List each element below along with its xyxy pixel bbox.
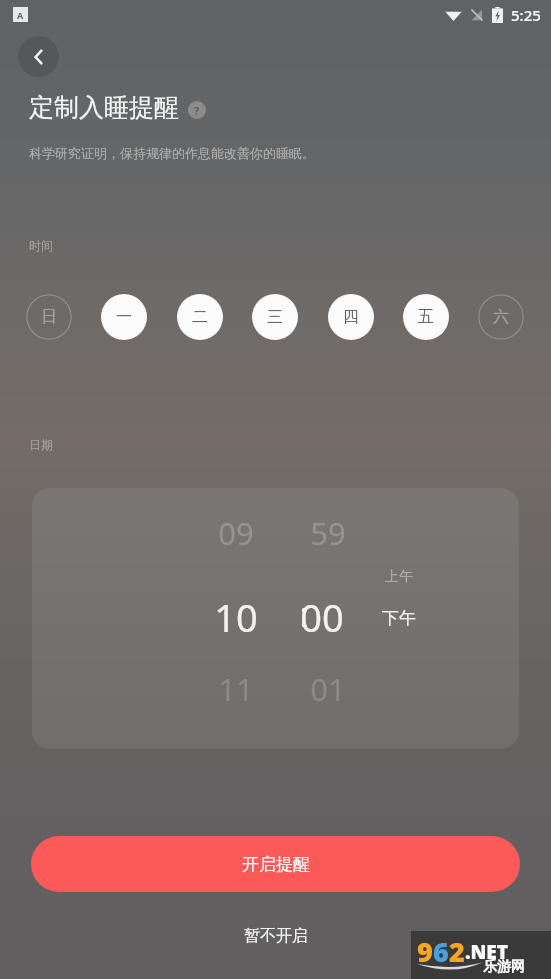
staticText: 四 — [343, 307, 359, 327]
button[interactable]: 下午 — [365, 602, 433, 634]
staticText: 5:25 — [511, 5, 541, 25]
staticText: 乐游网 — [483, 958, 525, 976]
staticText: 日 — [41, 307, 57, 327]
staticText: 日期 — [29, 437, 53, 452]
staticText: 2 — [449, 933, 465, 970]
staticText: 00 — [290, 591, 354, 643]
staticText: 暂不开启 — [244, 926, 308, 946]
button[interactable]: 二 — [177, 294, 223, 340]
staticText: 时间 — [29, 238, 53, 253]
staticText: 科学研究证明，保持规律的作息能改善你的睡眠。 — [29, 145, 315, 161]
button[interactable]: Help — [188, 101, 206, 119]
staticText: : — [286, 591, 322, 637]
button[interactable]: 六 — [478, 294, 524, 340]
button[interactable]: 上午 — [369, 564, 429, 590]
staticText: 6 — [433, 933, 449, 970]
button[interactable]: 一 — [101, 294, 147, 340]
staticText: 二 — [192, 307, 208, 327]
button[interactable]: 日 — [26, 294, 72, 340]
staticText: 定制入睡提醒 — [29, 92, 179, 123]
button[interactable]: 三 — [252, 294, 298, 340]
button[interactable]: 四 — [328, 294, 374, 340]
staticText: 开启提醒 — [242, 854, 310, 875]
staticText: .NET — [465, 939, 508, 965]
staticText: A — [17, 9, 24, 21]
staticText: 10 — [204, 591, 268, 643]
staticText: ? — [194, 103, 200, 118]
staticText: 下午 — [382, 608, 416, 629]
staticText: 9 — [417, 933, 433, 970]
button[interactable]: 暂不开启 — [205, 915, 346, 957]
staticText: 01 — [300, 668, 356, 710]
staticText: 六 — [493, 307, 509, 327]
staticText: 五 — [418, 307, 434, 327]
button[interactable]: Back — [18, 36, 59, 77]
staticText: 59 — [300, 512, 356, 554]
staticText: 上午 — [385, 568, 413, 586]
staticText: 11 — [208, 668, 264, 710]
button[interactable]: 开启提醒 — [31, 836, 520, 892]
staticText: 09 — [208, 512, 264, 554]
button[interactable]: 五 — [403, 294, 449, 340]
staticText: 一 — [116, 307, 132, 327]
staticText: 三 — [267, 307, 283, 327]
